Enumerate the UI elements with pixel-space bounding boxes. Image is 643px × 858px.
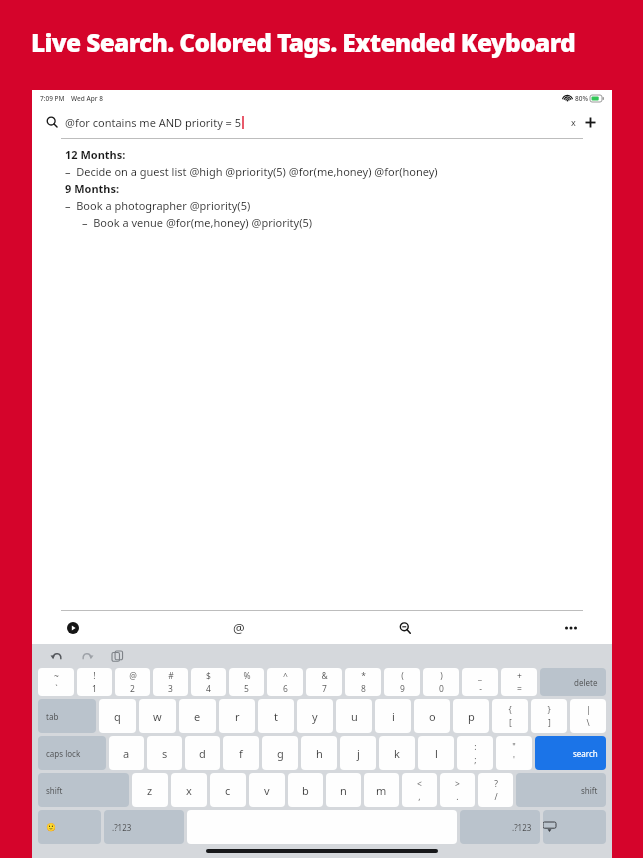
staticText: ) — [440, 670, 443, 682]
other: Search — [46, 116, 58, 128]
button[interactable]: 🙂 — [38, 810, 101, 844]
button[interactable]: u — [336, 699, 372, 733]
staticText: shift — [46, 785, 63, 796]
button[interactable]: .?123 — [460, 810, 540, 844]
button[interactable]: tab — [38, 699, 96, 733]
button[interactable]: % — [229, 668, 264, 696]
button[interactable]: shift — [38, 773, 129, 807]
button[interactable]: delete — [540, 668, 606, 696]
button[interactable]: .?123 — [104, 810, 184, 844]
button[interactable]: Search — [46, 106, 598, 138]
button[interactable]: caps lock — [38, 736, 106, 770]
button[interactable]: Add — [582, 114, 598, 130]
staticText: + — [517, 670, 522, 682]
button[interactable]: g — [262, 736, 298, 770]
button[interactable]: < — [402, 773, 437, 807]
button[interactable]: c — [210, 773, 246, 807]
staticText: 9 — [400, 683, 405, 695]
button[interactable]: r — [219, 699, 255, 733]
staticText: t — [274, 709, 278, 724]
button[interactable]: 12 Months: — [65, 147, 126, 162]
button[interactable]: Paste — [106, 645, 128, 667]
staticText: x — [571, 116, 576, 128]
button[interactable]: @ — [115, 668, 150, 696]
staticText: [ — [509, 717, 512, 729]
button[interactable]: Undo — [46, 645, 68, 667]
button[interactable]: Play — [62, 617, 84, 639]
button[interactable]: * — [345, 668, 381, 696]
button[interactable]: m — [364, 773, 399, 807]
staticText: .?123 — [512, 822, 532, 833]
staticText: 80% — [575, 94, 588, 103]
button[interactable]: { — [492, 699, 528, 733]
button[interactable]: v — [249, 773, 285, 807]
button[interactable]: | — [570, 699, 606, 733]
button[interactable]: f — [223, 736, 259, 770]
button[interactable]: p — [453, 699, 489, 733]
button[interactable]: y — [297, 699, 333, 733]
button[interactable]: k — [379, 736, 415, 770]
button[interactable]: ( — [384, 668, 420, 696]
button[interactable]: n — [326, 773, 361, 807]
button[interactable]: x — [171, 773, 207, 807]
staticText: r — [235, 709, 240, 724]
button[interactable]: Redo — [76, 645, 98, 667]
button[interactable]: s — [147, 736, 182, 770]
button[interactable]: More options — [560, 617, 582, 639]
button[interactable]: ^ — [267, 668, 303, 696]
staticText: f — [239, 746, 243, 761]
button[interactable]: # — [153, 668, 188, 696]
staticText: | — [586, 704, 591, 716]
button[interactable]: a — [109, 736, 144, 770]
staticText: ( — [401, 670, 404, 682]
button[interactable]: $ — [191, 668, 226, 696]
button[interactable]: j — [340, 736, 376, 770]
staticText: * — [361, 670, 366, 682]
button[interactable]: z — [132, 773, 168, 807]
button[interactable]: l — [418, 736, 454, 770]
button[interactable]: " — [496, 736, 532, 770]
button[interactable]: – Decide on a guest list @high @priority… — [65, 164, 438, 179]
button[interactable]: ) — [423, 668, 459, 696]
button[interactable]: _ — [462, 668, 498, 696]
button[interactable]: + — [501, 668, 537, 696]
button[interactable]: Search — [394, 617, 416, 639]
button[interactable]: : — [457, 736, 493, 770]
staticText: p — [468, 709, 475, 724]
button[interactable]: & — [306, 668, 342, 696]
button[interactable]: i — [375, 699, 411, 733]
button[interactable]: e — [179, 699, 216, 733]
button[interactable]: ~ — [38, 668, 74, 696]
button[interactable]: o — [414, 699, 450, 733]
staticText: m — [376, 783, 387, 798]
button[interactable]: h — [301, 736, 337, 770]
button[interactable]: > — [440, 773, 475, 807]
button[interactable]: ! — [77, 668, 112, 696]
button[interactable]: t — [258, 699, 294, 733]
staticText: tab — [46, 711, 59, 722]
button[interactable]: b — [288, 773, 323, 807]
staticText: 🙂 — [46, 823, 56, 832]
button[interactable]: Clear — [566, 115, 580, 129]
staticText: e — [194, 709, 201, 724]
button[interactable]: w — [139, 699, 176, 733]
staticText: w — [153, 709, 162, 724]
button[interactable]: – Book a photographer @priority(5) — [65, 198, 251, 213]
button[interactable]: 9 Months: — [65, 181, 120, 196]
button[interactable]: shift — [516, 773, 606, 807]
button[interactable]: Hide keyboard — [543, 810, 606, 844]
button[interactable]: Tags — [228, 617, 250, 639]
button[interactable]: d — [185, 736, 220, 770]
staticText: z — [147, 783, 153, 798]
staticText: delete — [574, 677, 598, 688]
button[interactable]: search — [535, 736, 606, 770]
button[interactable]: – Book a venue @for(me,honey) @priority(… — [82, 215, 313, 230]
staticText: , — [418, 791, 421, 803]
staticText: Wed Apr 8 — [71, 94, 103, 103]
button[interactable]: ? — [478, 773, 513, 807]
staticText: i — [392, 709, 395, 724]
button[interactable]: q — [99, 699, 136, 733]
staticText: l — [435, 746, 438, 761]
button[interactable]: } — [531, 699, 567, 733]
